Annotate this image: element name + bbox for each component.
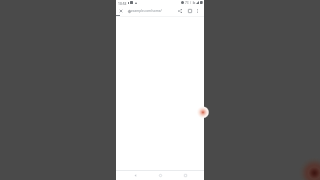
staticText: example.com/some/article xyxy=(131,9,163,13)
staticText: / xyxy=(190,1,192,5)
button[interactable]: Open chat xyxy=(195,104,211,120)
button[interactable]: More options xyxy=(193,7,201,15)
button[interactable]: Close tab xyxy=(117,7,125,15)
button[interactable]: Share xyxy=(176,7,184,15)
button[interactable]: Recent apps xyxy=(180,170,190,180)
button[interactable]: Home xyxy=(155,170,165,180)
button[interactable]: Back xyxy=(130,170,140,180)
staticText: 73 xyxy=(185,1,189,5)
staticText: 10:53 xyxy=(118,1,127,5)
button[interactable]: Tabs xyxy=(186,7,194,15)
